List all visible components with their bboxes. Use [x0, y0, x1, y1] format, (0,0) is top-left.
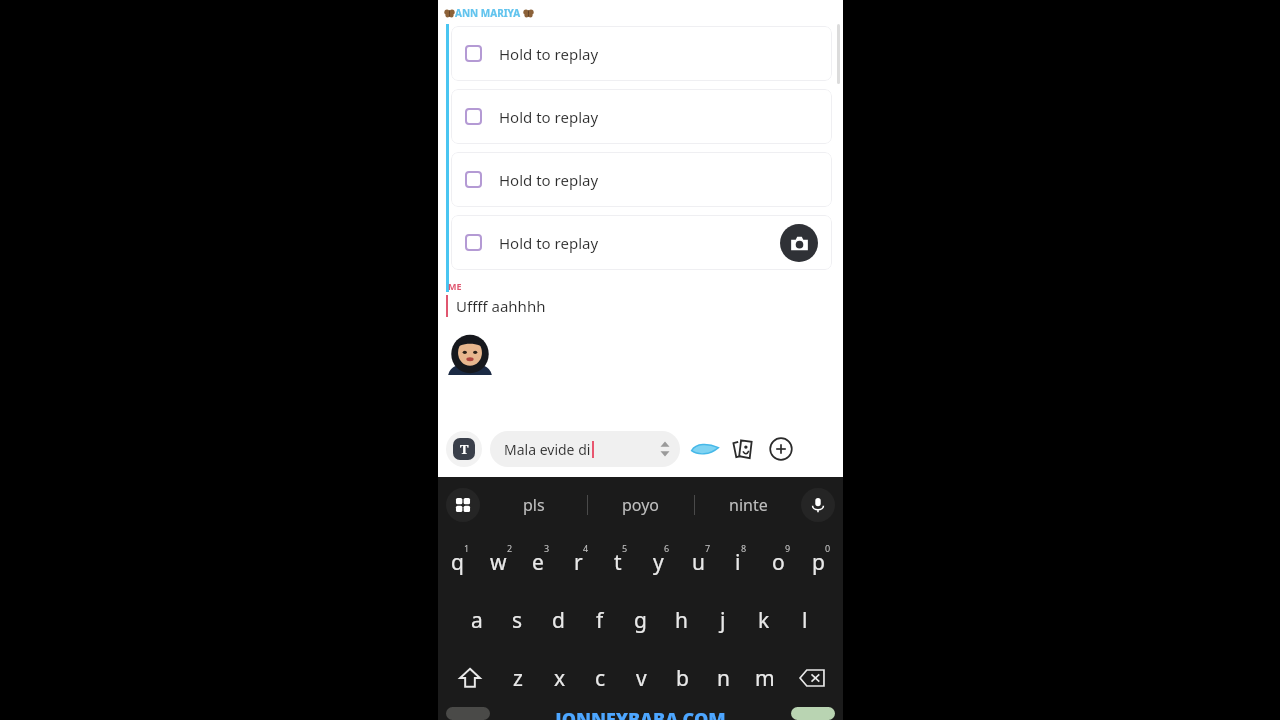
staticText: ME [448, 280, 462, 292]
button[interactable]: Hold to replay [451, 89, 832, 144]
staticText: m [755, 664, 775, 693]
staticText: 0 [825, 542, 831, 554]
button[interactable]: p [801, 533, 841, 591]
button[interactable]: d [538, 591, 579, 649]
staticText: g [634, 606, 647, 635]
staticText: a [471, 606, 483, 635]
staticText: n [717, 664, 730, 693]
staticText: t [614, 548, 622, 577]
button[interactable]: Voice input [801, 488, 835, 522]
staticText: j [720, 606, 726, 635]
button[interactable]: v [621, 649, 662, 707]
staticText: Mala evide di [504, 440, 591, 459]
button[interactable] [791, 707, 835, 720]
staticText: Hold to replay [499, 107, 599, 127]
staticText: Hold to replay [499, 233, 599, 253]
staticText: z [513, 664, 523, 693]
button[interactable]: poyo [588, 477, 694, 533]
staticText: ANN MARIYA [455, 6, 521, 20]
button[interactable]: Shift [442, 649, 497, 707]
button[interactable]: u [681, 533, 721, 591]
staticText: i [735, 548, 741, 577]
staticText: v [636, 664, 647, 693]
staticText: 5 [622, 542, 628, 554]
staticText: ninte [729, 494, 768, 516]
button[interactable]: f [579, 591, 620, 649]
button[interactable]: pls [480, 477, 587, 533]
staticText: y [653, 548, 664, 577]
button[interactable]: Backspace [785, 649, 839, 707]
button[interactable]: g [620, 591, 661, 649]
button[interactable]: e [521, 533, 561, 591]
staticText: x [554, 664, 566, 693]
staticText: poyo [622, 494, 660, 516]
button[interactable]: m [744, 649, 785, 707]
staticText: T [460, 440, 469, 458]
button[interactable]: z [497, 649, 539, 707]
staticText: Hold to replay [499, 170, 599, 190]
staticText: o [772, 548, 785, 577]
button[interactable]: j [702, 591, 743, 649]
staticText: u [692, 548, 705, 577]
staticText: 8 [741, 542, 747, 554]
staticText: 3 [544, 542, 550, 554]
button[interactable]: Hold to replay [451, 26, 832, 81]
button[interactable]: i [721, 533, 761, 591]
button[interactable]: Toolbar [446, 488, 480, 522]
staticText: 7 [705, 542, 711, 554]
button[interactable]: Hold to replay [451, 152, 832, 207]
staticText: Hold to replay [499, 44, 599, 64]
staticText: w [490, 548, 507, 577]
staticText: JONNEYBABA.COM [555, 707, 726, 720]
staticText: k [758, 606, 770, 635]
staticText: s [512, 606, 523, 635]
staticText: f [596, 606, 604, 635]
staticText: c [595, 664, 606, 693]
button[interactable]: Stickers [728, 434, 758, 464]
button[interactable]: ninte [695, 477, 801, 533]
button[interactable]: Mala evide di [490, 431, 680, 467]
button[interactable]: Hold to replay [451, 215, 832, 270]
staticText: 6 [664, 542, 670, 554]
button[interactable]: t [601, 533, 641, 591]
staticText: e [532, 548, 544, 577]
staticText: 2 [507, 542, 513, 554]
staticText: 4 [583, 542, 589, 554]
button[interactable]: w [481, 533, 521, 591]
button[interactable]: o [761, 533, 801, 591]
button[interactable]: q [440, 533, 481, 591]
button[interactable]: a [456, 591, 497, 649]
button[interactable]: l [784, 591, 825, 649]
staticText: r [574, 548, 583, 577]
staticText: h [675, 606, 688, 635]
button[interactable]: s [497, 591, 538, 649]
button[interactable]: k [743, 591, 784, 649]
button[interactable]: x [539, 649, 580, 707]
button[interactable]: r [561, 533, 601, 591]
staticText: Uffff aahhhh [456, 296, 546, 316]
staticText: q [451, 548, 464, 577]
button[interactable]: Add [766, 434, 796, 464]
button[interactable]: n [703, 649, 744, 707]
button[interactable]: y [641, 533, 681, 591]
staticText: l [802, 606, 808, 635]
button[interactable]: Camera [780, 224, 818, 262]
button[interactable]: h [661, 591, 702, 649]
staticText: 1 [464, 542, 470, 554]
button[interactable]: Text style [446, 431, 482, 467]
button[interactable]: Sticker [690, 434, 720, 464]
staticText: 9 [785, 542, 791, 554]
button[interactable]: c [580, 649, 621, 707]
staticText: pls [523, 494, 545, 516]
button[interactable] [446, 707, 490, 720]
staticText: d [552, 606, 565, 635]
button[interactable]: b [662, 649, 703, 707]
staticText: b [676, 664, 689, 693]
staticText: p [812, 548, 825, 577]
